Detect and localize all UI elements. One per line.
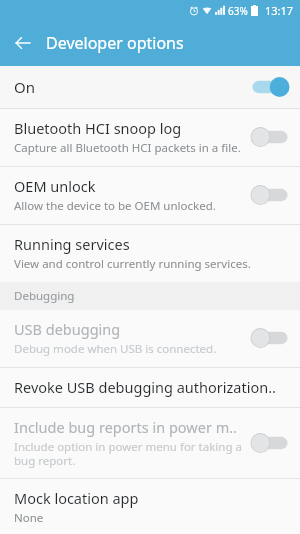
button[interactable]: Back: [8, 28, 38, 58]
button[interactable]: Mock location app: [0, 479, 300, 534]
button[interactable]: On: [0, 66, 300, 108]
button[interactable]: Revoke USB debugging authorization..: [0, 368, 300, 407]
button[interactable]: OEM unlock: [0, 167, 300, 224]
button[interactable]: Running services: [0, 225, 300, 282]
staticText: Debug mode when USB is connected.: [14, 341, 217, 357]
staticText: 13:17: [265, 3, 294, 18]
staticText: OEM unlock: [14, 176, 96, 196]
staticText: None: [14, 510, 44, 524]
button[interactable]: Toggle off: [250, 126, 290, 148]
button[interactable]: Toggle off: [250, 184, 290, 206]
button[interactable]: Toggle off: [250, 432, 290, 454]
staticText: USB debugging: [14, 319, 121, 339]
button[interactable]: USB debugging: [0, 310, 300, 367]
staticText: Include option in power menu for taking …: [14, 439, 242, 468]
staticText: Revoke USB debugging authorization..: [14, 377, 276, 397]
staticText: Allow the device to be OEM unlocked.: [14, 198, 216, 214]
button[interactable]: Toggle on: [250, 76, 290, 98]
button[interactable]: Toggle off: [250, 327, 290, 349]
staticText: Include bug reports in power m..: [14, 417, 238, 437]
staticText: 63%: [228, 4, 248, 18]
staticText: Mock location app: [14, 488, 139, 508]
staticText: On: [14, 77, 35, 97]
staticText: Capture all Bluetooth HCI packets in a f…: [14, 140, 241, 156]
staticText: Bluetooth HCI snoop log: [14, 118, 182, 138]
staticText: Debugging: [14, 288, 75, 304]
staticText: Developer options: [46, 32, 184, 54]
staticText: Running services: [14, 234, 130, 254]
button[interactable]: Include bug reports in power m..: [0, 408, 300, 478]
button[interactable]: Bluetooth HCI snoop log: [0, 109, 300, 166]
staticText: View and control currently running servi…: [14, 256, 251, 272]
